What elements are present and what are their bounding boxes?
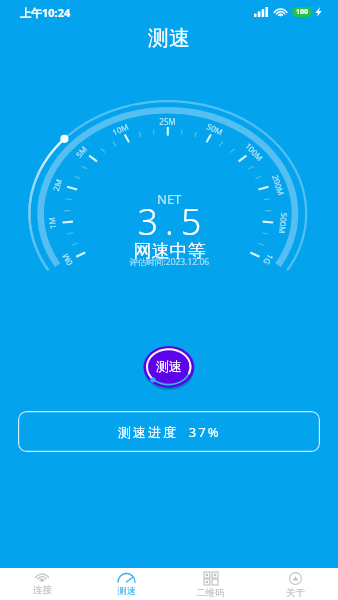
button[interactable]: 连接 bbox=[0, 568, 84, 600]
staticText: 二维码 bbox=[196, 587, 225, 599]
staticText: 上午10:24 bbox=[20, 5, 71, 20]
button[interactable]: 测速进度 37% bbox=[18, 411, 320, 452]
button[interactable]: 二维码 bbox=[168, 568, 253, 600]
staticText: 测速进度 37% bbox=[118, 423, 221, 441]
button[interactable]: 测速 开始测速 bbox=[143, 344, 195, 390]
staticText: 测速 bbox=[148, 25, 190, 51]
staticText: 100 bbox=[296, 7, 309, 17]
staticText: 测速 bbox=[117, 585, 136, 597]
button[interactable]: 关于 bbox=[253, 568, 338, 600]
button[interactable]: 测速 bbox=[84, 568, 168, 600]
staticText: 连接 bbox=[33, 584, 52, 596]
staticText: 测速 bbox=[156, 358, 182, 374]
staticText: 关于 bbox=[286, 587, 305, 599]
